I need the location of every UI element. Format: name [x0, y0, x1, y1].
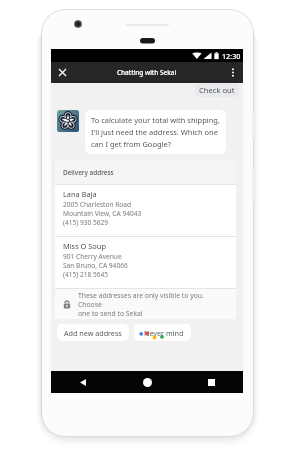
- staticText: Delivery address: [63, 168, 114, 177]
- staticText: To calculate your total with shipping, I…: [91, 115, 220, 149]
- button[interactable]: Check out: [195, 83, 239, 97]
- button[interactable]: Recents: [196, 371, 226, 393]
- staticText: These addresses are only visible to you.…: [78, 291, 228, 318]
- staticText: 2005 Charleston Road Mountain View, CA 9…: [63, 200, 142, 227]
- staticText: 901 Cherry Avenue San Bruno, CA 94066 (4…: [63, 252, 128, 279]
- button[interactable]: More options: [223, 62, 243, 83]
- button[interactable]: Back: [68, 371, 98, 393]
- staticText: 12:30: [222, 51, 241, 61]
- staticText: Check out: [199, 85, 235, 95]
- button[interactable]: Close: [51, 62, 73, 83]
- button[interactable]: Home: [132, 371, 162, 393]
- button[interactable]: Lana Baja: [55, 185, 236, 236]
- staticText: Chatting with Sekai: [117, 68, 177, 77]
- staticText: Lana Baja: [63, 189, 97, 199]
- staticText: Add new address: [64, 328, 122, 338]
- staticText: Miss O Soup: [63, 241, 106, 251]
- button[interactable]: Add new address: [57, 324, 129, 341]
- staticText: Never mind: [144, 328, 184, 338]
- button[interactable]: Never mind: [134, 324, 191, 341]
- button[interactable]: Miss O Soup: [55, 237, 236, 288]
